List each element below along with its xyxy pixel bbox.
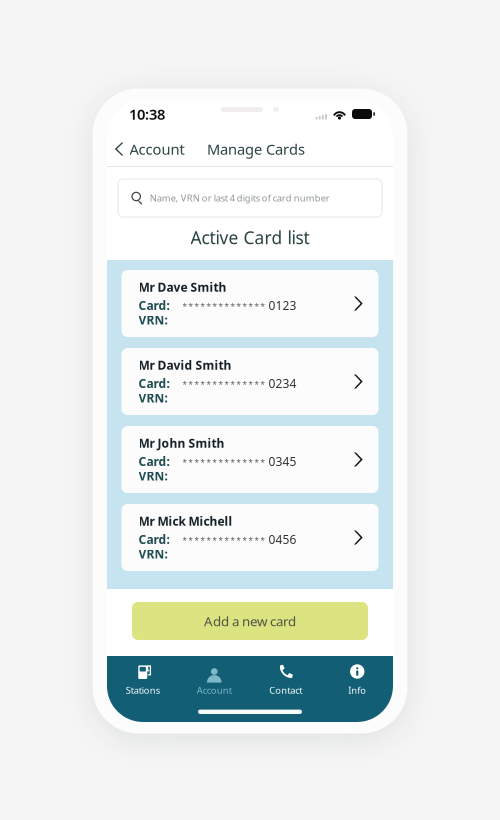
staticText: VRN: [138,546,167,562]
staticText: Manage Cards [207,139,305,159]
button[interactable]: Mr John Smith [121,426,378,493]
staticText: Active Card list [190,226,309,249]
staticText: Card: [138,531,169,547]
staticText: Card: [138,453,169,469]
staticText: Mr John Smith [138,435,224,451]
button[interactable]: Account [107,134,190,164]
button[interactable]: Info [321,656,393,700]
button[interactable]: Account [178,656,250,700]
staticText: Name, VRN or last 4 digits of card numbe… [150,192,330,204]
staticText: Contact [269,684,302,696]
staticText: Add a new card [204,612,296,630]
staticText: 0345 [268,453,296,469]
button[interactable]: Stations [107,656,178,700]
staticText: 0234 [268,375,296,391]
staticText: Account [129,139,184,159]
button[interactable]: Mr David Smith [121,348,378,415]
button[interactable]: Mr Dave Smith [121,270,378,337]
staticText: Mr Mick Michell [138,513,232,529]
staticText: Card: [138,297,169,313]
staticText: Card: [138,375,169,391]
staticText: Mr David Smith [138,357,231,373]
staticText: VRN: [138,312,167,328]
staticText: 0123 [268,297,296,313]
button[interactable]: Name, VRN or last 4 digits of card numbe… [118,179,382,217]
staticText: Stations [126,684,160,696]
staticText: * * * * * * * * * * * * * * [182,535,264,546]
staticText: Mr Dave Smith [138,279,226,295]
staticText: 10:38 [129,104,165,124]
staticText: VRN: [138,468,167,484]
staticText: * * * * * * * * * * * * * * [182,457,264,468]
staticText: Info [348,684,366,696]
staticText: Account [197,684,232,696]
staticText: VRN: [138,390,167,406]
staticText: 0456 [268,531,296,547]
staticText: * * * * * * * * * * * * * * [182,379,264,390]
staticText: * * * * * * * * * * * * * * [182,301,264,312]
button[interactable]: Mr Mick Michell [121,504,378,571]
button[interactable]: Add a new card [132,602,368,640]
button[interactable]: Contact [250,656,321,700]
